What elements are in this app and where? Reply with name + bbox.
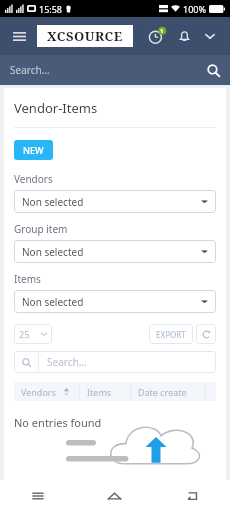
button[interactable]: Non selected [14, 240, 216, 263]
staticText: Vendor-Items [14, 99, 98, 117]
staticText: Non selected [22, 245, 84, 259]
staticText: No entries found [14, 415, 102, 430]
staticText: Vendors [21, 386, 56, 398]
staticText: Group item [14, 222, 68, 236]
staticText: Items [14, 272, 41, 286]
staticText: XCSOURCE [47, 27, 123, 45]
staticText: 1 [160, 27, 164, 35]
button[interactable]: Recents [0, 480, 76, 512]
other: Search table [22, 358, 31, 367]
staticText: 25 [19, 328, 30, 340]
staticText: EXPORT [156, 329, 186, 340]
button[interactable]: 25 [14, 324, 52, 344]
staticText: Date create [138, 386, 187, 398]
other: Search [207, 64, 220, 77]
button[interactable]: Menu [8, 25, 30, 47]
staticText: 100% [183, 3, 206, 15]
staticText: Non selected [22, 195, 84, 209]
button[interactable]: Vendors [14, 382, 79, 401]
staticText: Search... [10, 63, 50, 77]
staticText: Search... [47, 355, 87, 369]
button[interactable]: Date create [131, 382, 205, 401]
button[interactable]: Refresh [196, 324, 216, 344]
button[interactable]: Notifications [172, 24, 196, 48]
staticText: 15:58 [39, 3, 63, 15]
staticText: Items [87, 386, 112, 398]
button[interactable]: Search... [0, 55, 230, 85]
button[interactable]: Non selected [14, 290, 216, 313]
button[interactable]: Home [76, 480, 153, 512]
staticText: Non selected [22, 295, 84, 309]
button[interactable]: Back [153, 480, 230, 512]
button[interactable]: Items [80, 382, 130, 401]
button[interactable]: Non selected [14, 190, 216, 213]
button[interactable]: More [198, 24, 222, 48]
button[interactable]: Search table [14, 351, 216, 373]
staticText: Vendors [14, 172, 53, 186]
staticText: NEW [23, 144, 44, 156]
button[interactable]: NEW [14, 140, 53, 160]
button[interactable]: History [144, 23, 170, 49]
button[interactable]: XCSOURCE [47, 25, 123, 47]
button[interactable]: EXPORT [149, 324, 193, 344]
